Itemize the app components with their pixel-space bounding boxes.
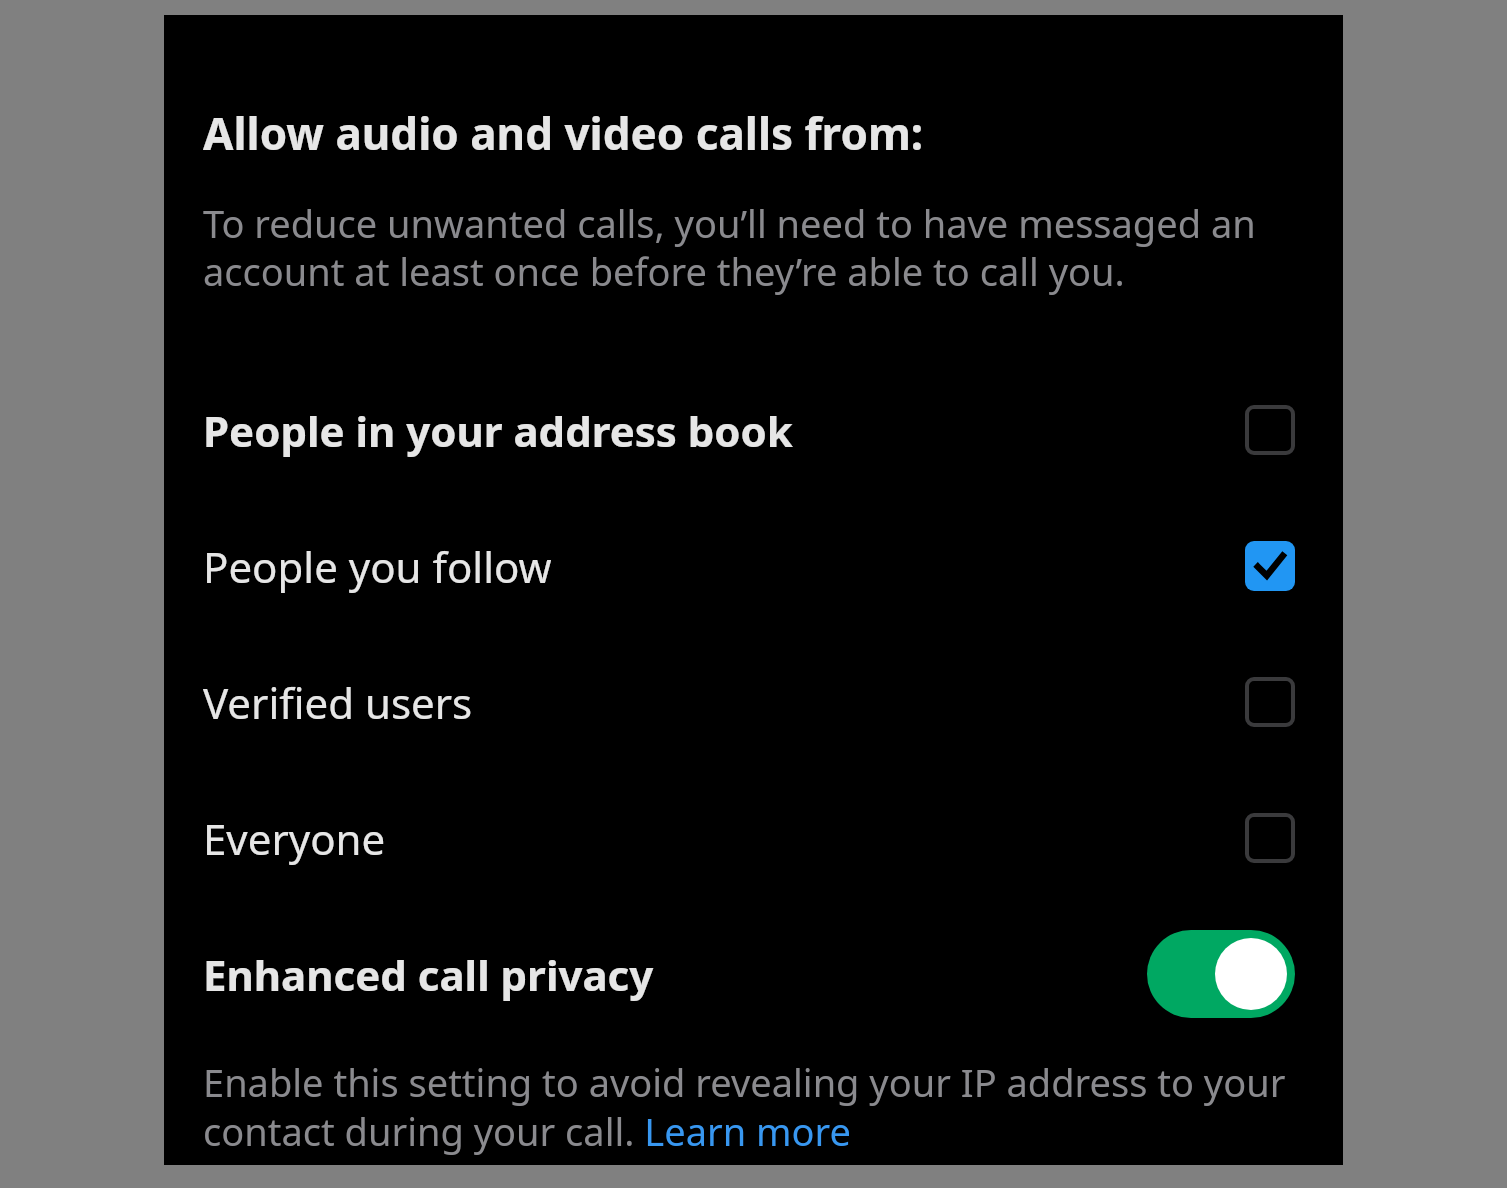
button[interactable]: Verified users — [203, 634, 1295, 770]
button[interactable]: People you follow — [203, 498, 1295, 634]
button[interactable]: People in your address book — [203, 362, 1295, 498]
button[interactable]: Enable this setting to avoid revealing y… — [203, 1056, 1295, 1157]
button[interactable]: Enhanced call privacy — [203, 906, 1295, 1042]
staticText: Allow audio and video calls from: — [203, 103, 924, 163]
button[interactable]: Everyone — [203, 770, 1295, 906]
staticText: Enhanced call privacy — [203, 946, 1147, 1003]
staticText: Verified users — [203, 674, 1245, 731]
staticText: To reduce unwanted calls, you’ll need to… — [203, 197, 1295, 298]
staticText: People you follow — [203, 538, 1245, 595]
staticText: People in your address book — [203, 402, 1245, 459]
other: Enhanced call privacy, on — [1147, 930, 1295, 1018]
staticText: Everyone — [203, 810, 1245, 867]
